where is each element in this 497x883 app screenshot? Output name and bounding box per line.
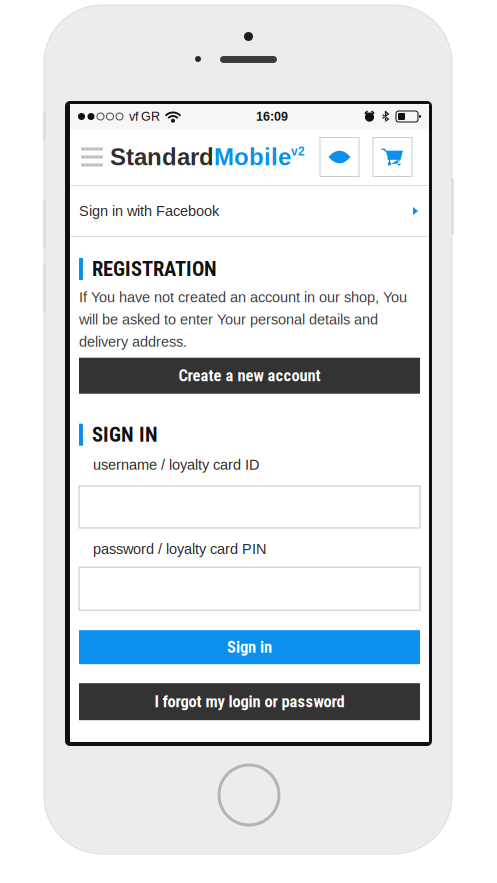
- staticText: vf GR: [129, 109, 160, 123]
- staticText: I forgot my login or password: [154, 692, 344, 711]
- button[interactable]: Preview store: [320, 137, 359, 176]
- button[interactable]: Sign in: [79, 630, 420, 664]
- button[interactable]: Shopping cart: [373, 137, 412, 176]
- staticText: REGISTRATION: [92, 257, 217, 281]
- button[interactable]: I forgot my login or password: [79, 683, 420, 720]
- staticText: v2: [291, 145, 305, 158]
- button[interactable]: Menu: [74, 129, 110, 185]
- button[interactable]: Sign in with Facebook: [70, 186, 429, 236]
- staticText: Create a new account: [178, 366, 320, 385]
- staticText: password / loyalty card PIN: [93, 541, 266, 557]
- button[interactable]: Text field: [79, 486, 420, 528]
- staticText: Sign in: [227, 637, 272, 657]
- staticText: Sign in with Facebook: [79, 203, 219, 219]
- staticText: Mobile: [214, 144, 291, 170]
- staticText: If You have not created an account in ou…: [79, 289, 407, 350]
- staticText: username / loyalty card ID: [93, 457, 259, 473]
- button[interactable]: Create a new account: [79, 358, 420, 394]
- staticText: 16:09: [256, 109, 288, 123]
- staticText: SIGN IN: [92, 423, 158, 447]
- staticText: Standard: [110, 144, 214, 170]
- button[interactable]: Text field: [79, 567, 420, 610]
